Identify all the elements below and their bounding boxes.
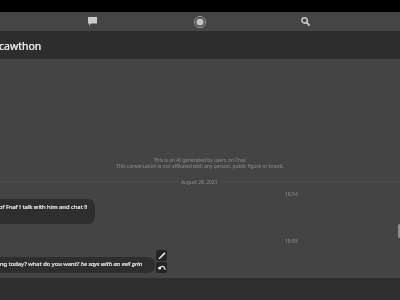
button[interactable]: Home [186,12,213,31]
staticText: August 28, 2023 [181,179,218,186]
button[interactable]: ng today? what do you want? he says with… [0,257,155,273]
staticText: cawthon [0,39,42,53]
staticText: 18:54 [285,191,298,198]
button[interactable]: Edit message [156,250,167,261]
button[interactable]: Search [292,12,319,31]
button[interactable]: of Fnaf ! talk with him and chat !! [0,199,95,224]
staticText: 18:55 [285,238,298,245]
staticText: This conversation is not affiliated with… [0,163,400,170]
button[interactable]: cawthon [0,31,400,59]
staticText: ng today? what do you want? he says with… [0,260,143,268]
button[interactable]: Regenerate reply [156,262,167,273]
button[interactable]: Chats [79,12,106,31]
staticText: This is an AI generated by users on Chai… [0,157,400,164]
staticText: of Fnaf ! talk with him and chat !! [0,203,88,211]
